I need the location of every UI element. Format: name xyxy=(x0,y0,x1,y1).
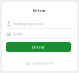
staticText: Senha xyxy=(13,31,23,36)
staticText: Entrar xyxy=(33,8,46,13)
staticText: Entrar xyxy=(32,44,45,50)
button[interactable]: Entrar xyxy=(6,42,71,52)
staticText: Esqueci minha senha xyxy=(25,62,53,65)
button[interactable]: Esqueci minha senha xyxy=(2,60,77,67)
button[interactable]: Telefone ou e-mail xyxy=(2,19,77,29)
button[interactable]: Senha xyxy=(2,29,77,39)
staticText: Telefone ou e-mail xyxy=(13,21,44,26)
